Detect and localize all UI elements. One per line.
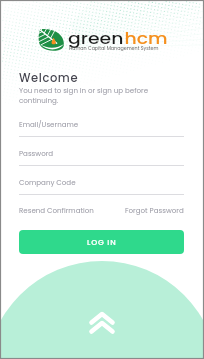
staticText: Human Capital Management System [69, 45, 159, 52]
staticText: Forgot Password [125, 206, 184, 216]
button[interactable]: Scroll up [89, 311, 115, 334]
button[interactable] [19, 172, 184, 196]
staticText: Welcome [19, 70, 79, 86]
staticText: Email/Username [19, 120, 79, 130]
button[interactable]: Forgot Password [125, 206, 184, 216]
button[interactable] [19, 143, 184, 167]
staticText: Company Code [19, 178, 76, 188]
staticText: Password [19, 149, 54, 159]
staticText: You need to sign in or sign up before co… [19, 86, 149, 105]
staticText: green [68, 28, 124, 49]
button[interactable]: LOG IN [19, 230, 184, 254]
staticText: Resend Confirmation [19, 206, 94, 216]
button[interactable] [19, 114, 184, 138]
staticText: LOG IN [87, 237, 117, 248]
staticText: hcm [124, 28, 168, 49]
button[interactable]: Resend Confirmation [19, 206, 94, 216]
